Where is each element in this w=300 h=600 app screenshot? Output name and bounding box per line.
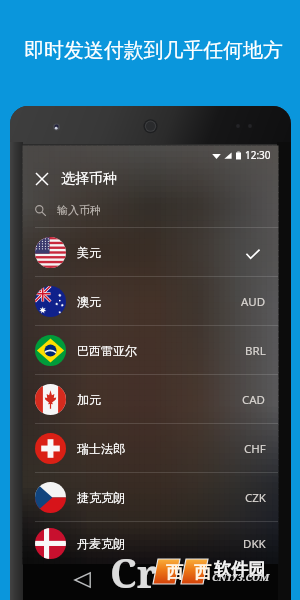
staticText: 西 <box>194 562 211 583</box>
staticText: 软件园 <box>214 559 265 580</box>
staticText: 西 <box>166 562 183 583</box>
staticText: CZK <box>245 490 266 506</box>
staticText: 选择币种 <box>61 170 117 188</box>
button[interactable]: 瑞士法郎 <box>23 423 278 472</box>
staticText: CN173.COM <box>212 571 270 584</box>
button[interactable]: 捷克克朗 <box>23 472 278 521</box>
staticText: 捷克克朗 <box>77 490 125 505</box>
button[interactable]: 美元 <box>23 227 278 276</box>
button[interactable]: 加元 <box>23 374 278 423</box>
staticText: 巴西雷亚尔 <box>77 343 137 358</box>
staticText: 即时发送付款到几乎任何地方 <box>24 38 283 63</box>
staticText: 美元 <box>77 245 101 260</box>
staticText: AUD <box>241 294 266 310</box>
staticText: BRL <box>245 343 266 359</box>
staticText: Cr <box>110 545 158 590</box>
staticText: CAD <box>242 392 266 408</box>
button[interactable]: 澳元 <box>23 276 278 325</box>
button[interactable]: 丹麦克朗 <box>23 521 278 564</box>
staticText: CHF <box>244 441 266 457</box>
staticText: 丹麦克朗 <box>77 536 125 551</box>
button[interactable]: Close <box>23 164 61 193</box>
staticText: 输入币种 <box>57 203 101 217</box>
staticText: 12:30 <box>245 148 271 162</box>
button[interactable]: 巴西雷亚尔 <box>23 325 278 374</box>
staticText: DKK <box>243 536 266 552</box>
button[interactable]: Back <box>66 564 98 596</box>
button[interactable]: 输入币种 <box>23 193 278 227</box>
staticText: 瑞士法郎 <box>77 441 125 456</box>
staticText: 加元 <box>77 392 101 407</box>
staticText: 澳元 <box>77 294 101 309</box>
